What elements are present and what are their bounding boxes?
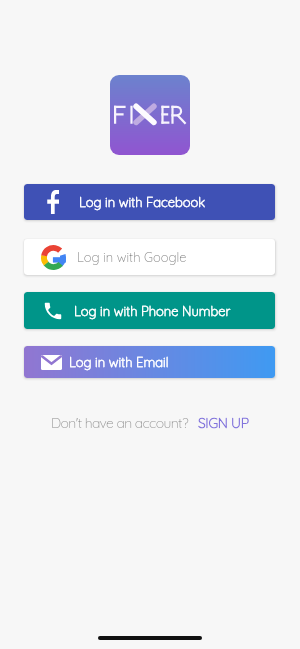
staticText: Log in with Google (77, 249, 187, 265)
staticText: Log in with Phone Number (74, 303, 231, 319)
other: Fixer logo (110, 75, 190, 155)
button[interactable]: Email (24, 346, 275, 378)
other: Phone (42, 300, 64, 322)
other: Email (41, 355, 62, 370)
staticText: SIGN UP (198, 414, 249, 432)
button[interactable]: Log in with Facebook (24, 184, 275, 220)
other: Google (41, 245, 66, 270)
staticText: Log in with Facebook (79, 194, 205, 210)
button[interactable]: Google (24, 239, 275, 275)
button[interactable]: Phone (24, 292, 275, 329)
staticText: Don't have an account? (51, 414, 188, 432)
button[interactable]: SIGN UP (198, 414, 249, 432)
staticText: Log in with Email (69, 354, 169, 370)
